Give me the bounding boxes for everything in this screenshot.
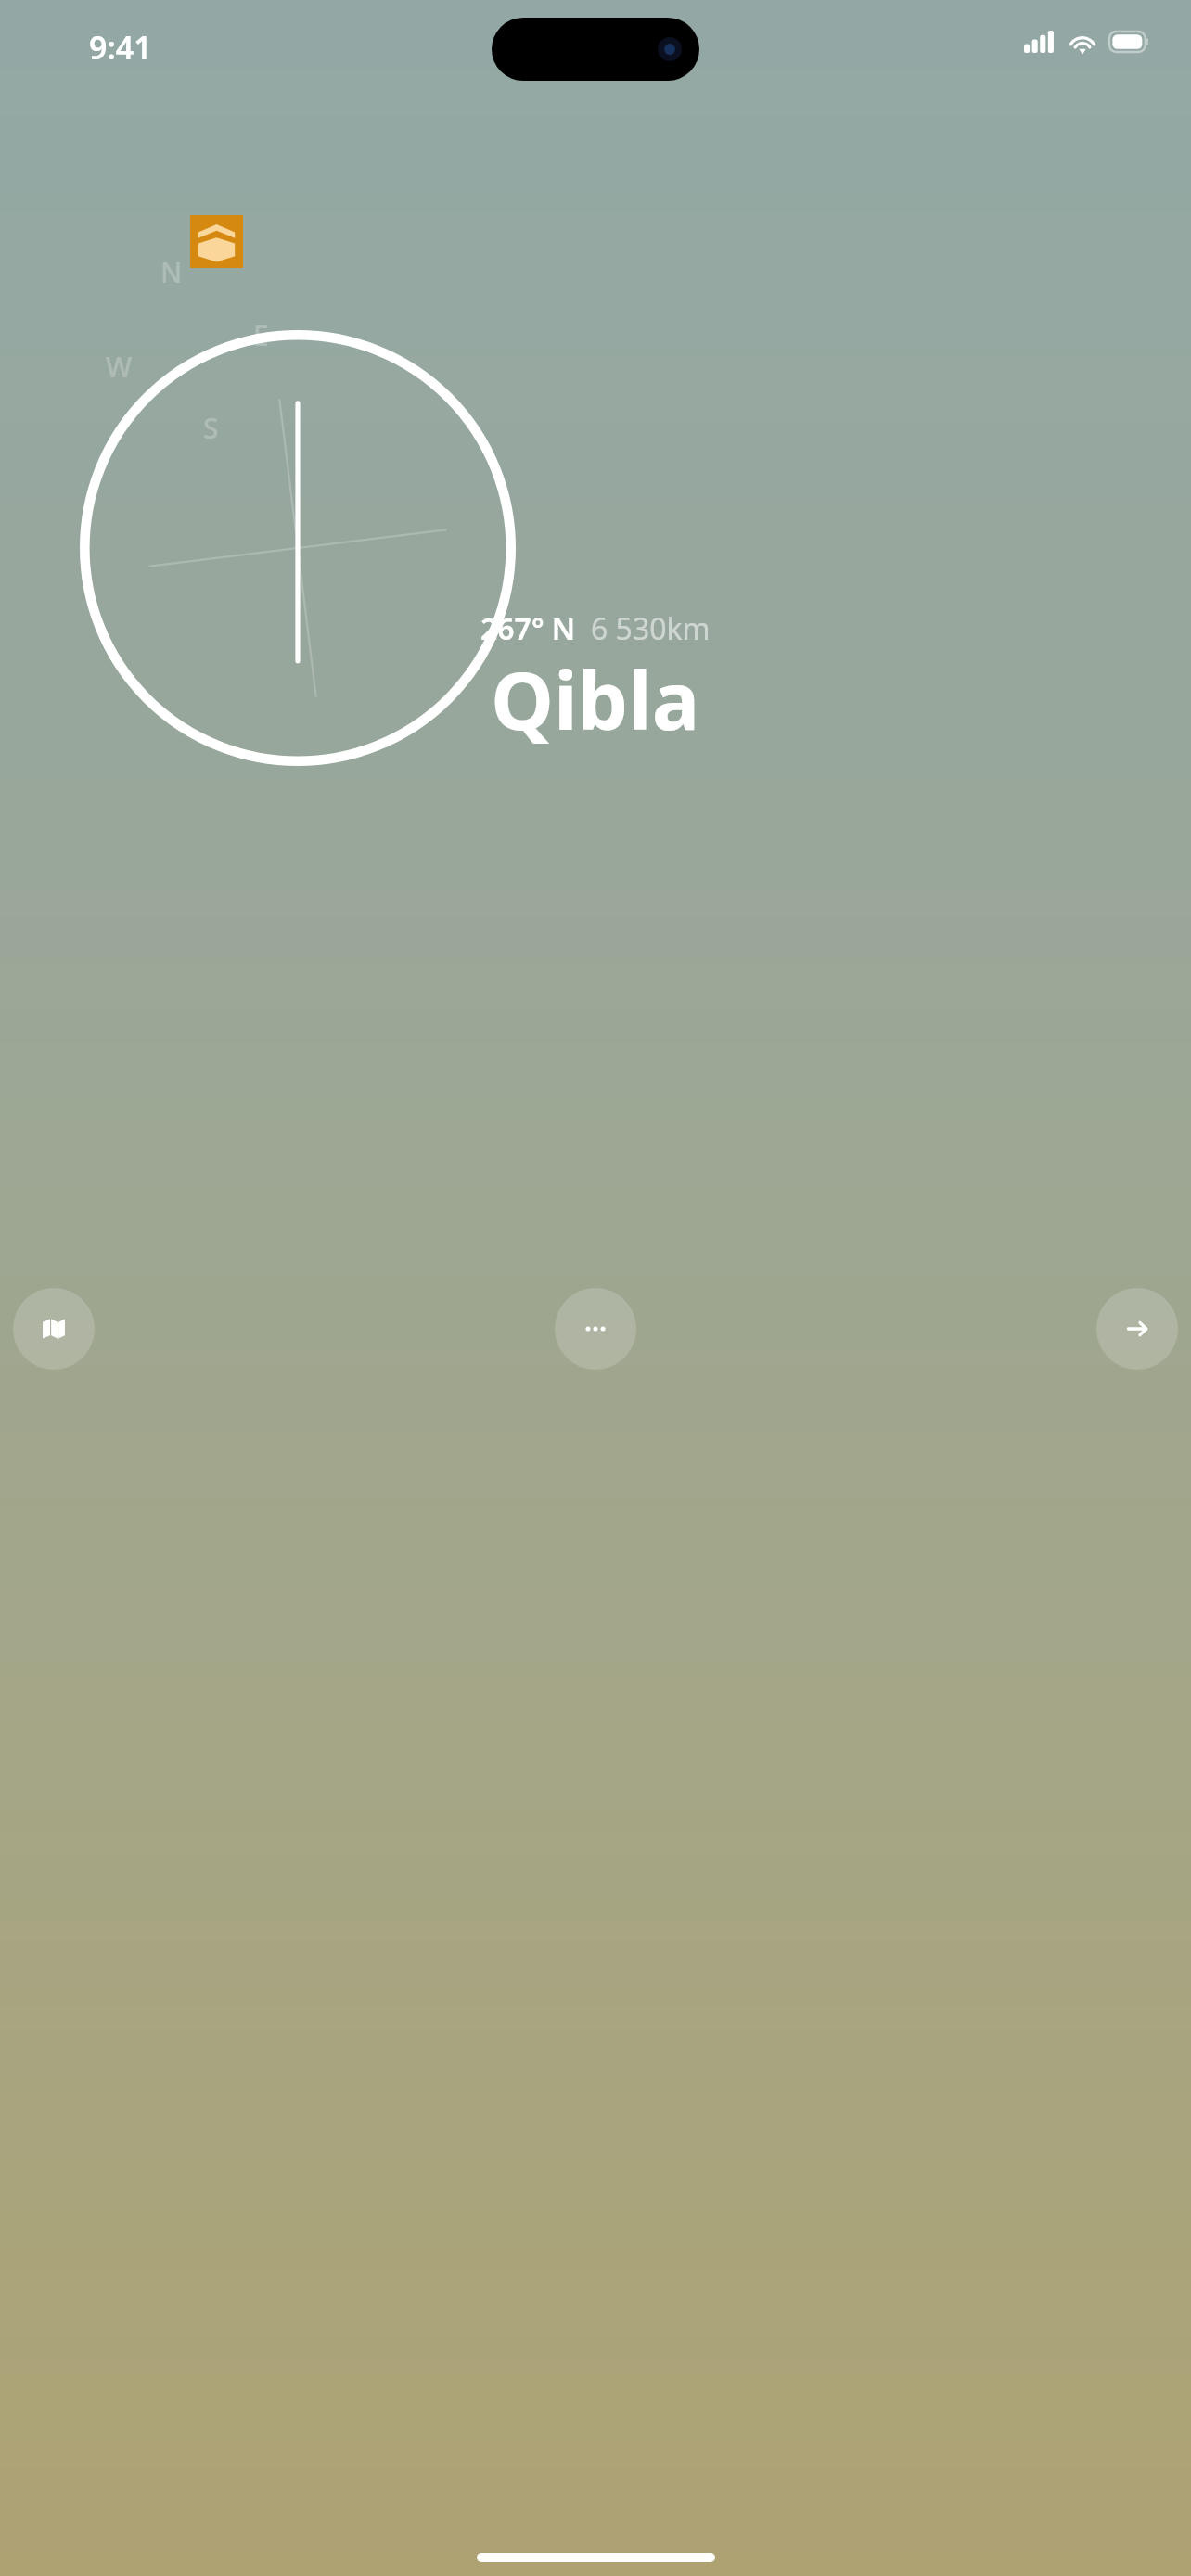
staticText: 9:41 (89, 26, 152, 69)
staticText: E (253, 316, 269, 354)
button[interactable]: Map (13, 1288, 95, 1370)
staticText: N (160, 253, 183, 291)
staticText: 267° N (480, 608, 576, 649)
button[interactable]: Next (1096, 1288, 1178, 1370)
button[interactable]: Kaaba direction (190, 215, 243, 268)
staticText: W (106, 348, 133, 386)
staticText: 6 530km (591, 608, 711, 649)
staticText: Qibla (491, 644, 700, 753)
button[interactable]: More options (555, 1288, 636, 1370)
staticText: S (203, 409, 219, 447)
